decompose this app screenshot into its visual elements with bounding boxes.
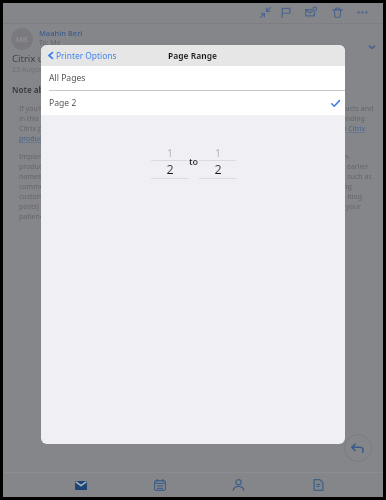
staticText: All Pages <box>49 72 86 84</box>
staticText: Citrix portfolio. You can find a great d… <box>19 124 366 134</box>
staticText: Note about usage <box>12 84 84 95</box>
staticText: Maahin Beri <box>39 28 83 38</box>
staticText: Page Range <box>168 50 218 61</box>
staticText: MB <box>16 34 28 44</box>
button[interactable]: Files <box>306 473 330 497</box>
staticText: To: Me <box>39 38 61 48</box>
staticText: products <box>19 134 49 144</box>
staticText: 2 <box>166 161 174 178</box>
staticText: community sites, marketing collateral an… <box>19 182 352 192</box>
button[interactable]: Calendar <box>148 473 172 497</box>
button[interactable]: Printer Options <box>45 50 117 61</box>
staticText: customer facing content, including all o… <box>19 192 363 202</box>
staticText: patience. <box>19 212 50 222</box>
staticText: names as well as in a wide range of othe… <box>19 172 372 182</box>
button[interactable]: More <box>352 2 372 22</box>
staticText: Printer Options <box>56 50 117 61</box>
staticText: Page 2 <box>49 97 77 109</box>
staticText: 23 August 2021 at 09:05 <box>12 65 91 75</box>
button[interactable]: Delete <box>327 2 347 22</box>
button[interactable]: Page 2 <box>41 91 345 115</box>
button[interactable]: People <box>226 473 250 497</box>
button[interactable]: Flag <box>275 2 295 22</box>
staticText: in this message have been changed over t… <box>19 114 365 124</box>
button[interactable]: Expand <box>366 41 378 53</box>
staticText: Implementation of all of these changes w… <box>19 152 351 162</box>
staticText: to <box>188 155 199 167</box>
staticText: 1 <box>215 146 221 160</box>
button[interactable]: All Pages <box>41 66 345 90</box>
staticText: product changes and updates to the docum… <box>19 162 369 172</box>
staticText: 2 <box>214 161 222 178</box>
staticText: posts) will all be updated progressively… <box>19 202 361 212</box>
staticText: Citrix updates <box>12 52 74 65</box>
button[interactable]: Mark unread <box>301 2 321 22</box>
staticText: 1 <box>167 146 173 160</box>
button[interactable]: Mail <box>69 473 93 497</box>
staticText: If you're reading this email, you may al… <box>19 104 374 114</box>
button[interactable]: Collapse <box>255 2 275 22</box>
button[interactable]: Reply <box>344 434 372 462</box>
